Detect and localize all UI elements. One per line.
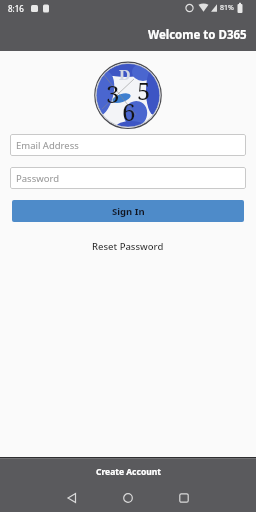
button[interactable]: Create Account: [0, 457, 256, 483]
button[interactable]: [110, 483, 146, 512]
staticText: Sign In: [112, 205, 145, 218]
staticText: 3: [106, 77, 120, 110]
staticText: Reset Password: [92, 240, 164, 253]
button[interactable]: Password: [10, 167, 246, 189]
staticText: 8:16: [8, 3, 24, 14]
button[interactable]: [166, 483, 202, 512]
staticText: Welcome to D365: [148, 27, 247, 43]
staticText: 5: [137, 74, 151, 107]
staticText: Email Address: [16, 139, 79, 152]
button[interactable]: Sign In: [12, 200, 244, 222]
staticText: D: [119, 64, 131, 84]
staticText: Create Account: [96, 466, 161, 478]
button[interactable]: Email Address: [10, 134, 246, 156]
button[interactable]: [54, 483, 90, 512]
staticText: 6: [122, 95, 136, 128]
staticText: 81%: [220, 3, 234, 13]
staticText: Password: [16, 172, 59, 185]
button[interactable]: Reset Password: [0, 235, 256, 257]
